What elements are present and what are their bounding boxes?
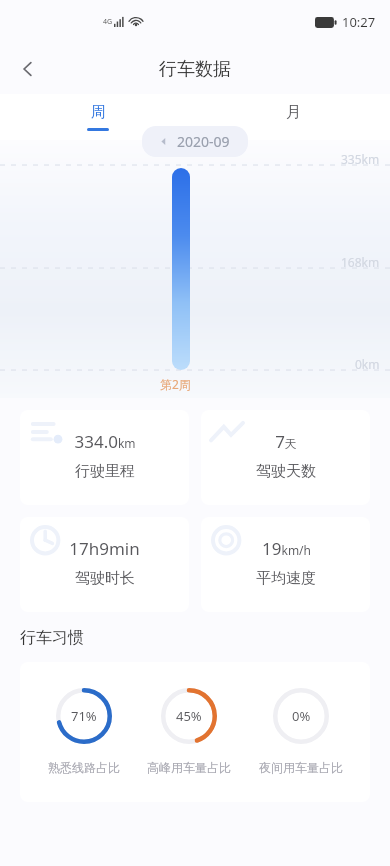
staticText: 驾驶天数 <box>256 462 316 481</box>
staticText: 第2周 <box>160 376 191 392</box>
button[interactable]: 19km/h <box>201 517 370 612</box>
button[interactable]: 7天 <box>201 410 370 505</box>
button[interactable]: 334.0km <box>20 410 189 505</box>
button[interactable]: 周 <box>0 94 195 140</box>
staticText: 0% <box>292 707 311 725</box>
button[interactable]: 17h9min <box>20 517 189 612</box>
staticText: 行车习惯 <box>20 628 84 648</box>
staticText: 71% <box>71 707 97 725</box>
staticText: 平均速度 <box>256 569 316 588</box>
staticText: 高峰用车量占比 <box>147 760 231 775</box>
staticText: 驾驶时长 <box>75 569 135 588</box>
staticText: 19km/h <box>262 537 311 560</box>
staticText: 7天 <box>275 430 297 453</box>
staticText: 2020-09 <box>177 132 230 151</box>
button[interactable]: 71% <box>48 688 120 775</box>
staticText: 17h9min <box>69 537 140 560</box>
button[interactable]: 45% <box>147 688 231 775</box>
staticText: 行驶里程 <box>75 462 135 481</box>
button[interactable]: Back <box>8 49 48 89</box>
button[interactable]: 2020-09 <box>142 126 248 157</box>
staticText: 10:27 <box>342 13 376 31</box>
staticText: 334.0km <box>74 430 136 453</box>
staticText: 熟悉线路占比 <box>48 760 120 775</box>
staticText: 夜间用车量占比 <box>259 760 343 775</box>
staticText: 行车数据 <box>159 58 231 81</box>
staticText: 4G <box>103 17 113 27</box>
staticText: 168km <box>341 254 380 270</box>
staticText: 335km <box>341 151 380 167</box>
staticText: 45% <box>176 707 202 725</box>
button[interactable]: 0% <box>259 688 343 775</box>
staticText: 月 <box>286 103 301 122</box>
staticText: 周 <box>91 103 106 122</box>
button[interactable]: 月 <box>195 94 390 140</box>
staticText: 0km <box>355 356 380 372</box>
